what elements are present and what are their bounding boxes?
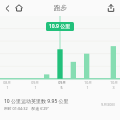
button[interactable]: Back: [2, 3, 13, 14]
staticText: 1: [86, 85, 89, 90]
button[interactable]: 10 公里运动英里数 9.95 公里: [0, 95, 120, 113]
button[interactable]: Home: [13, 2, 25, 14]
button[interactable]: 10.9 公里: [46, 22, 74, 31]
staticText: 跑步: [54, 4, 67, 12]
staticText: 用时 01:04:32 配速 6'29": [4, 106, 50, 111]
staticText: 3: [112, 85, 115, 90]
staticText: 5: [60, 85, 63, 90]
staticText: 09月: [31, 80, 39, 85]
button[interactable]: Share: [105, 2, 117, 14]
staticText: 10 公里运动英里数 9.95 公里: [4, 98, 69, 105]
staticText: 09月: [58, 80, 66, 85]
staticText: 10月: [84, 80, 92, 85]
staticText: 08月: [3, 80, 11, 85]
staticText: 9月30日: [101, 102, 116, 107]
staticText: 10.9 公里: [49, 23, 71, 30]
staticText: 1: [34, 85, 37, 90]
staticText: 1: [6, 85, 9, 90]
staticText: 10月: [110, 80, 118, 85]
